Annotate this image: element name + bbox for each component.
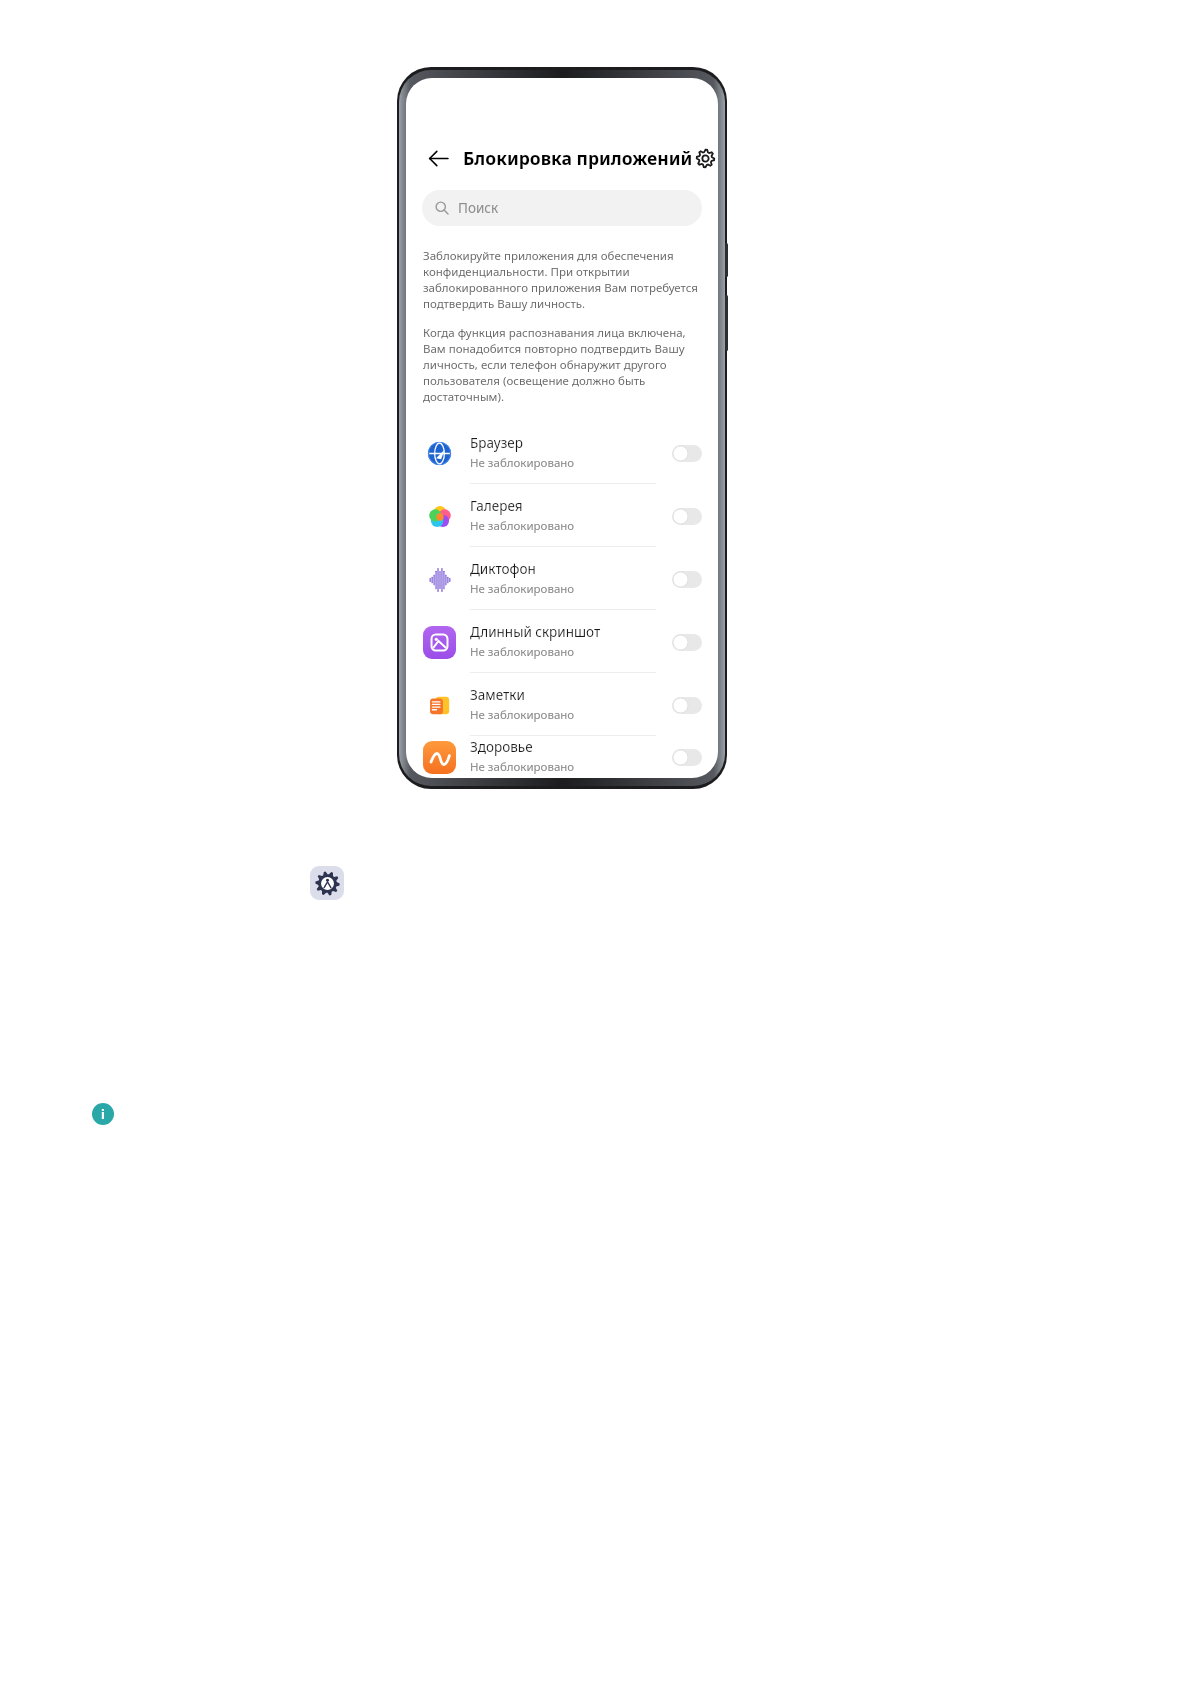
button[interactable]: Настройки <box>310 866 344 900</box>
staticText: i <box>101 1105 105 1123</box>
staticText: Здоровье <box>470 738 533 756</box>
staticText: Не заблокировано <box>470 707 575 723</box>
staticText: Не заблокировано <box>470 518 575 534</box>
staticText: Заметки <box>470 686 525 704</box>
button[interactable]: Галерея <box>406 484 718 547</box>
staticText: Не заблокировано <box>470 759 575 775</box>
staticText: Не заблокировано <box>470 455 575 471</box>
staticText: Поиск <box>458 199 499 217</box>
button[interactable]: Блокировать Браузер <box>670 438 704 468</box>
button[interactable]: Настройки <box>693 140 718 176</box>
button[interactable]: Блокировать Длинный скриншот <box>670 627 704 657</box>
button[interactable]: Диктофон <box>406 547 718 610</box>
button[interactable]: Здоровье <box>406 736 718 778</box>
button[interactable]: Длинный скриншот <box>406 610 718 673</box>
staticText: Заблокируйте приложения для обеспечения … <box>423 248 701 312</box>
button[interactable]: Браузер <box>406 421 718 484</box>
button[interactable]: Блокировать Диктофон <box>670 564 704 594</box>
button[interactable]: Информация <box>92 1103 114 1125</box>
staticText: Когда функция распознавания лица включен… <box>423 325 701 405</box>
staticText: Не заблокировано <box>470 581 575 597</box>
staticText: Длинный скриншот <box>470 623 601 641</box>
button[interactable]: Поиск <box>422 190 702 226</box>
staticText: Галерея <box>470 497 523 515</box>
button[interactable]: Блокировать Заметки <box>670 690 704 720</box>
button[interactable]: Назад <box>420 140 456 176</box>
staticText: Блокировка приложений <box>463 146 693 170</box>
button[interactable]: Заметки <box>406 673 718 736</box>
staticText: Не заблокировано <box>470 644 575 660</box>
button[interactable]: Блокировать Галерея <box>670 501 704 531</box>
button[interactable]: Блокировать Здоровье <box>670 742 704 772</box>
staticText: Диктофон <box>470 560 536 578</box>
staticText: Браузер <box>470 434 523 452</box>
